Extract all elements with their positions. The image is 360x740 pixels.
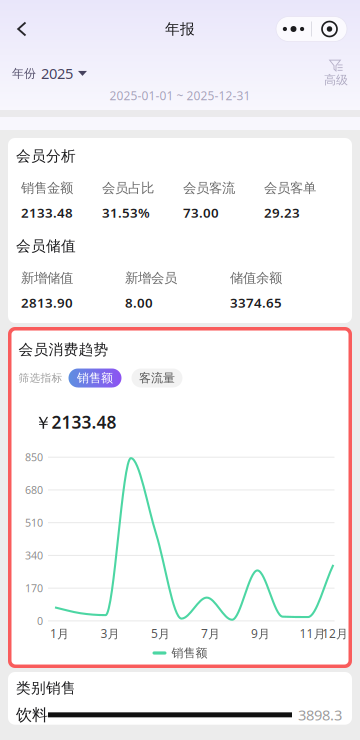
staticText: 销售金额 [21,180,73,196]
staticText: 会员客单 [264,180,316,196]
staticText: 340 [25,548,43,562]
staticText: 销售额 [77,371,113,385]
staticText: 2025-01-01 ~ 2025-12-31 [109,87,250,103]
staticText: 11月 [299,625,325,641]
staticText: 5月 [151,625,170,641]
button[interactable]: 客流量 [131,368,182,387]
staticText: 2133.48 [21,204,73,221]
staticText: 12月 [322,625,348,641]
staticText: 3月 [100,625,119,641]
staticText: 31.53% [102,204,150,221]
staticText: 新增储值 [21,270,73,286]
button[interactable]: 年份 [0,60,87,87]
staticText: 170 [25,581,43,595]
staticText: 年份 [12,66,36,81]
staticText: 会员储值 [16,237,76,255]
staticText: 7月 [201,625,220,641]
staticText: 2813.90 [21,294,73,311]
staticText: 会员消费趋势 [18,340,108,358]
staticText: 饮料 [16,705,48,725]
staticText: 680 [25,483,43,497]
button[interactable]: Close [312,16,347,41]
staticText: 会员分析 [16,147,76,165]
staticText: 新增会员 [125,270,177,286]
staticText: 9月 [251,625,270,641]
staticText: 2025 [41,64,73,83]
staticText: 会员占比 [102,180,154,196]
staticText: 客流量 [139,371,175,385]
staticText: 销售额 [171,646,207,660]
staticText: 8.00 [125,294,153,311]
staticText: 29.23 [264,204,300,221]
button[interactable]: Back [0,9,44,49]
button[interactable]: 销售额 [68,368,121,387]
staticText: 储值余额 [230,270,282,286]
staticText: 年报 [165,20,195,38]
staticText: ￥2133.48 [34,410,116,433]
button[interactable]: Advanced filter [324,59,360,87]
staticText: 会员客流 [183,180,235,196]
staticText: 510 [25,516,43,530]
staticText: 850 [25,450,43,464]
staticText: 0 [37,614,43,628]
staticText: 1月 [50,625,69,641]
staticText: 高级 [324,72,348,87]
staticText: 筛选指标 [18,371,62,384]
staticText: 3898.3 [298,705,342,725]
staticText: 类别销售 [16,679,76,697]
staticText: 3374.65 [230,294,282,311]
staticText: 73.00 [183,204,219,221]
button[interactable]: More [276,16,311,41]
